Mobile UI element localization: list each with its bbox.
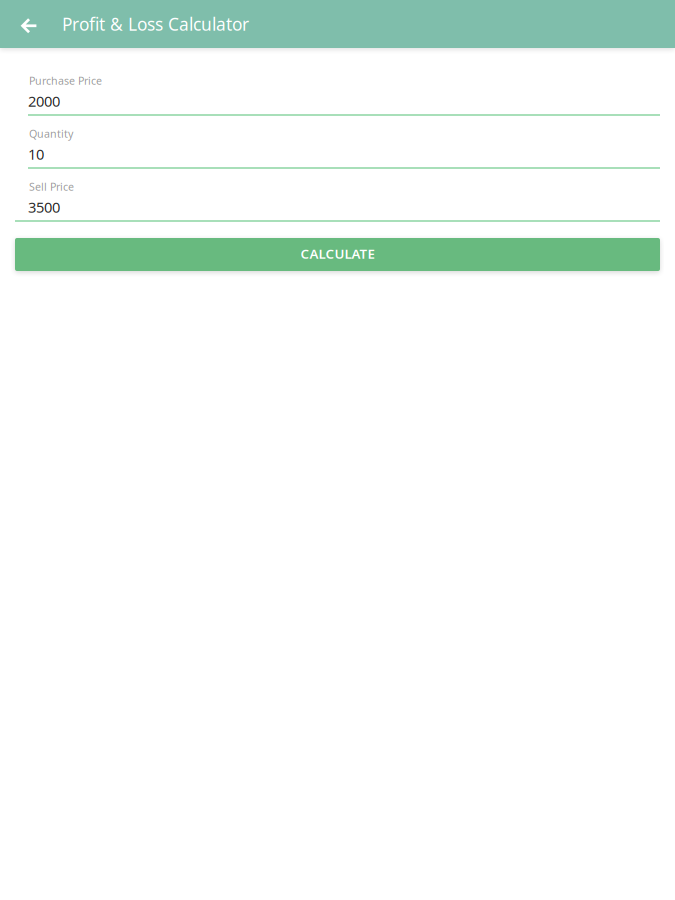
button[interactable]: CALCULATE [15, 238, 660, 271]
button[interactable]: Purchase Price [0, 76, 675, 116]
staticText: Quantity [29, 126, 73, 141]
staticText: Sell Price [29, 179, 74, 194]
staticText: 2000 [28, 91, 60, 111]
staticText: CALCULATE [300, 245, 374, 262]
staticText: 10 [28, 144, 44, 164]
button[interactable]: Sell Price [0, 182, 675, 222]
staticText: Purchase Price [29, 73, 102, 88]
button[interactable]: Quantity [0, 129, 675, 169]
staticText: Profit & Loss Calculator [62, 12, 249, 35]
button[interactable]: Back [0, 0, 62, 48]
staticText: 3500 [28, 197, 60, 217]
